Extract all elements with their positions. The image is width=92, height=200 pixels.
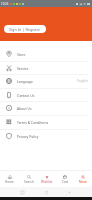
staticText: English	[77, 79, 88, 83]
button[interactable]: Sign In | Register	[4, 25, 46, 33]
button[interactable]: Search	[19, 170, 38, 187]
staticText: Service	[17, 66, 29, 71]
staticText: Search	[24, 180, 34, 184]
staticText: Privacy Policy	[17, 134, 39, 139]
staticText: About Us	[17, 106, 32, 111]
staticText: More	[79, 180, 87, 184]
button[interactable]: About Us	[0, 101, 92, 115]
staticText: Cart	[62, 180, 69, 184]
button[interactable]: Home	[0, 170, 19, 187]
button[interactable]: Terms & Conditions	[0, 115, 92, 129]
staticText: Store	[17, 52, 26, 57]
staticText: Contact Us	[17, 93, 35, 98]
staticText: Home	[5, 180, 14, 184]
staticText: Wishlist	[41, 180, 53, 184]
button[interactable]: Wishlist	[38, 170, 56, 187]
button[interactable]: Store	[0, 47, 92, 61]
button[interactable]: Contact Us	[0, 88, 92, 102]
staticText: Sign In | Register	[9, 27, 41, 32]
button[interactable]: More	[74, 170, 92, 187]
button[interactable]: Language	[0, 74, 92, 88]
staticText: Terms & Conditions	[17, 120, 49, 125]
staticText: Language	[17, 79, 33, 84]
button[interactable]: Service	[0, 61, 92, 75]
button[interactable]: Cart	[56, 170, 74, 187]
button[interactable]: Privacy Policy	[0, 129, 92, 143]
staticText: 10:24	[1, 2, 9, 6]
